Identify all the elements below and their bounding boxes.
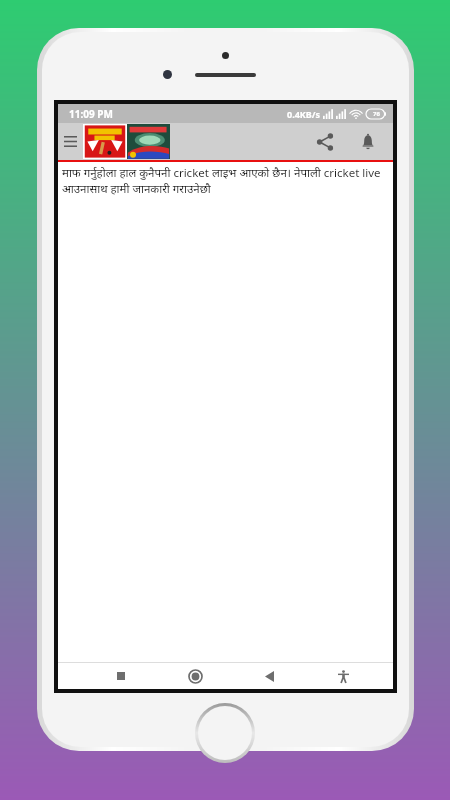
button[interactable]: Home [174,663,216,689]
button[interactable]: Nepali cricket stadium logo [127,124,170,159]
button[interactable]: Accessibility [322,663,364,689]
staticText: 11:09 PM [69,107,113,121]
button[interactable]: Recent apps [100,663,142,689]
button[interactable]: Share [303,123,347,160]
staticText: 76 [373,110,380,118]
button[interactable]: Back [248,663,290,689]
staticText: माफ गर्नुहोला हाल कुनैपनी cricket लाइभ आ… [62,165,389,197]
button[interactable]: Open navigation menu [58,123,83,160]
button[interactable]: Nepali Cricket Update logo [83,124,127,159]
staticText: 0.4KB/s [287,108,321,120]
button[interactable]: Notifications [347,123,389,160]
other: Home button [198,706,252,760]
